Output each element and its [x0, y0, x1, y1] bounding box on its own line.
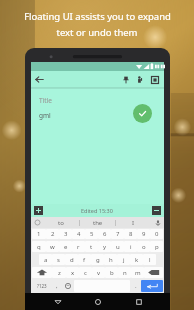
button[interactable]: p: [150, 241, 163, 252]
button[interactable]: the: [80, 217, 115, 228]
staticText: p: [155, 243, 159, 251]
staticText: d: [70, 256, 74, 264]
button[interactable]: b: [105, 267, 118, 278]
staticText: I: [132, 219, 135, 227]
button[interactable]: 3: [59, 229, 72, 239]
button[interactable]: n: [118, 267, 131, 278]
button[interactable]: Back: [31, 71, 48, 88]
button[interactable]: c: [79, 267, 92, 278]
staticText: .: [135, 282, 137, 290]
button[interactable]: o: [137, 241, 150, 252]
button[interactable]: 0: [150, 229, 163, 239]
staticText: z: [58, 269, 61, 277]
button[interactable]: .: [130, 280, 141, 292]
button[interactable]: l: [143, 254, 156, 265]
button[interactable]: Back: [49, 293, 66, 310]
button[interactable]: I: [116, 217, 151, 228]
staticText: i: [130, 243, 132, 251]
staticText: o: [142, 243, 146, 251]
staticText: gml: [39, 111, 51, 120]
button[interactable]: Save note: [133, 104, 152, 123]
staticText: 4: [77, 230, 81, 238]
staticText: ,: [56, 282, 58, 290]
staticText: Title: [39, 96, 52, 105]
button[interactable]: s: [52, 254, 65, 265]
button[interactable]: w: [46, 241, 59, 252]
staticText: s: [57, 256, 60, 264]
staticText: ?123: [37, 283, 47, 289]
staticText: 3: [64, 230, 68, 238]
button[interactable]: Pin note: [119, 71, 133, 88]
staticText: l: [149, 256, 151, 264]
button[interactable]: v: [92, 267, 105, 278]
staticText: 5: [90, 230, 94, 238]
button[interactable]: 1: [32, 229, 46, 239]
button[interactable]: Recents: [130, 293, 147, 310]
staticText: the: [93, 219, 103, 227]
staticText: w: [50, 243, 55, 251]
staticText: r: [77, 243, 80, 251]
staticText: v: [97, 269, 101, 277]
button[interactable]: Reminder: [133, 71, 147, 88]
staticText: Edited 15:30: [81, 207, 113, 214]
staticText: x: [71, 269, 75, 277]
button[interactable]: m: [131, 267, 144, 278]
button[interactable]: 4: [72, 229, 85, 239]
staticText: t: [90, 243, 93, 251]
button[interactable]: 5: [85, 229, 98, 239]
staticText: text or undo them: [56, 26, 138, 39]
button[interactable]: i: [124, 241, 137, 252]
staticText: b: [110, 269, 114, 277]
button[interactable]: a: [39, 254, 52, 265]
button[interactable]: r: [72, 241, 85, 252]
staticText: y: [103, 243, 107, 251]
button[interactable]: Home: [89, 293, 106, 310]
staticText: Floating UI assists you to expand: [24, 10, 171, 23]
button[interactable]: g: [91, 254, 104, 265]
button[interactable]: Add: [34, 206, 43, 215]
button[interactable]: z: [52, 267, 66, 278]
button[interactable]: e: [59, 241, 72, 252]
button[interactable]: f: [78, 254, 91, 265]
button[interactable]: 6: [98, 229, 111, 239]
staticText: 0: [155, 230, 159, 238]
button[interactable]: More options: [152, 206, 161, 215]
staticText: g: [96, 256, 100, 264]
staticText: n: [123, 269, 127, 277]
staticText: 1: [37, 230, 41, 238]
button[interactable]: d: [65, 254, 78, 265]
button[interactable]: Voice input: [151, 217, 164, 228]
button[interactable]: k: [130, 254, 143, 265]
button[interactable]: q: [32, 241, 46, 252]
button[interactable]: 8: [124, 229, 137, 239]
staticText: f: [83, 256, 86, 264]
staticText: 6: [103, 230, 107, 238]
button[interactable]: Emoji: [62, 280, 74, 292]
button[interactable]: Enter: [141, 280, 163, 292]
button[interactable]: to: [43, 217, 79, 228]
staticText: 9: [142, 230, 146, 238]
button[interactable]: 2: [46, 229, 59, 239]
button[interactable]: More suggestions: [31, 217, 43, 228]
button[interactable]: 9: [137, 229, 150, 239]
button[interactable]: h: [104, 254, 117, 265]
button[interactable]: x: [66, 267, 79, 278]
button[interactable]: j: [117, 254, 130, 265]
staticText: c: [84, 269, 87, 277]
staticText: h: [109, 256, 113, 264]
staticText: a: [44, 256, 48, 264]
button[interactable]: ?123: [32, 280, 51, 292]
staticText: k: [135, 256, 139, 264]
button[interactable]: ,: [51, 280, 62, 292]
staticText: u: [116, 243, 120, 251]
button[interactable]: Archive: [147, 71, 162, 88]
button[interactable]: y: [98, 241, 111, 252]
button[interactable]: 7: [111, 229, 124, 239]
button[interactable]: u: [111, 241, 124, 252]
staticText: j: [123, 256, 125, 264]
staticText: to: [58, 219, 64, 227]
button[interactable]: t: [85, 241, 98, 252]
button[interactable]: Shift: [32, 267, 52, 278]
button[interactable]: Backspace: [144, 267, 163, 278]
